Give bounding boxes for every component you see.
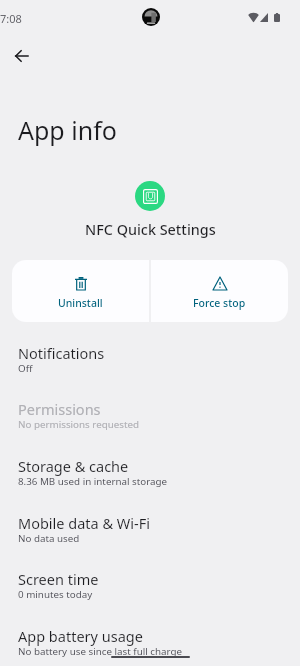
button[interactable]: Back — [3, 38, 39, 74]
staticText: 7:08 — [0, 11, 22, 26]
staticText: Permissions — [18, 399, 101, 419]
staticText: Mobile data & Wi-Fi — [18, 513, 151, 533]
button[interactable]: Mobile data & Wi-Fi — [0, 506, 300, 563]
staticText: Force stop — [193, 296, 246, 310]
staticText: App info — [18, 113, 117, 147]
staticText: 8.36 MB used in internal storage — [18, 475, 168, 488]
button[interactable]: Notifications — [0, 336, 300, 393]
staticText: Notifications — [18, 343, 105, 363]
staticText: No data used — [18, 532, 80, 545]
staticText: Storage & cache — [18, 456, 129, 476]
button[interactable]: Force stop — [151, 260, 288, 322]
button[interactable]: Storage & cache — [0, 449, 300, 506]
button[interactable]: App battery usage — [0, 619, 300, 666]
staticText: No battery use since last full charge — [18, 645, 183, 658]
button[interactable]: Uninstall — [12, 260, 149, 322]
staticText: Uninstall — [58, 296, 103, 310]
staticText: NFC Quick Settings — [85, 220, 216, 240]
staticText: Screen time — [18, 569, 99, 589]
staticText: Off — [18, 362, 33, 375]
staticText: 0 minutes today — [18, 588, 93, 601]
staticText: No permissions requested — [18, 418, 140, 431]
button[interactable]: Permissions — [0, 392, 300, 449]
button[interactable]: Screen time — [0, 562, 300, 619]
staticText: App battery usage — [18, 626, 143, 646]
